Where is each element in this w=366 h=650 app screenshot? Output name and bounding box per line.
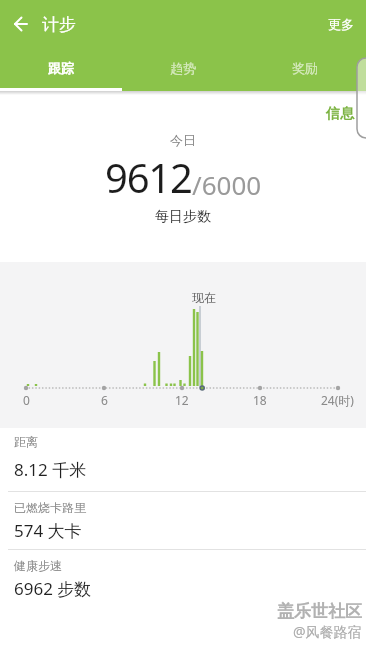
staticText: 健康步速 — [14, 558, 62, 573]
staticText: 今日 — [170, 132, 196, 148]
staticText: 6962 步数 — [14, 577, 92, 600]
staticText: /6000 — [192, 167, 262, 202]
button[interactable]: 跟踪 — [0, 48, 122, 91]
staticText: 6 — [101, 392, 108, 408]
staticText: 12 — [175, 392, 189, 408]
staticText: 0 — [23, 392, 30, 408]
staticText: 信息 — [326, 105, 354, 123]
button[interactable]: 健康步速 — [0, 550, 366, 607]
staticText: 已燃烧卡路里 — [14, 500, 86, 515]
staticText: 奖励 — [292, 60, 318, 76]
staticText: 每日步数 — [155, 208, 211, 226]
staticText: 18 — [253, 392, 267, 408]
staticText: 24(时) — [321, 392, 354, 408]
button[interactable]: 更多 — [316, 8, 366, 40]
staticText: 盖乐世社区 — [277, 601, 362, 622]
staticText: @风餐路宿 — [293, 622, 362, 641]
staticText: 趋势 — [170, 60, 196, 76]
staticText: 计步 — [42, 14, 76, 35]
staticText: 更多 — [328, 16, 354, 32]
button[interactable]: 信息 — [322, 101, 358, 127]
button[interactable]: 奖励 — [244, 48, 366, 91]
staticText: 现在 — [192, 290, 216, 305]
button[interactable]: 已燃烧卡路里 — [0, 492, 366, 550]
staticText: 8.12 千米 — [14, 458, 87, 481]
staticText: 574 大卡 — [14, 519, 82, 542]
button[interactable]: 趋势 — [122, 48, 244, 91]
button[interactable]: 距离 — [0, 428, 366, 492]
staticText: 距离 — [14, 434, 38, 449]
staticText: 跟踪 — [48, 60, 74, 76]
button[interactable] — [0, 0, 42, 48]
staticText: 9612 — [105, 150, 192, 204]
